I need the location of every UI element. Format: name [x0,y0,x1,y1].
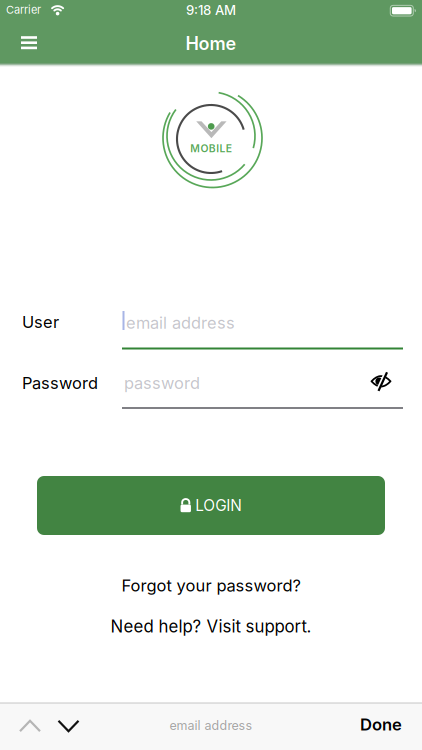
staticText: email address [169,718,252,733]
button[interactable]: Forgot your password? [121,575,300,595]
button[interactable]: Next field [56,717,81,735]
staticText: Carrier [6,3,41,16]
button[interactable]: Menu [11,25,47,61]
staticText: Forgot your password? [121,575,300,595]
button[interactable]: Email address [122,296,403,349]
staticText: email address [126,313,235,333]
staticText: User [22,312,59,332]
staticText: password [124,373,200,393]
button[interactable]: Need help? Visit support. [110,616,311,637]
staticText: 9:18 AM [186,2,236,18]
button[interactable]: Show password [366,367,396,395]
staticText: Password [22,373,98,393]
button[interactable]: Done [351,704,411,744]
button[interactable]: LOGIN [37,476,385,535]
staticText: Done [360,714,402,735]
staticText: Need help? Visit support. [110,616,311,637]
button[interactable]: Password [122,357,403,409]
staticText: MOBILE [190,142,232,155]
staticText: Home [185,33,236,54]
staticText: LOGIN [195,496,242,515]
button[interactable]: Previous field [17,717,42,735]
